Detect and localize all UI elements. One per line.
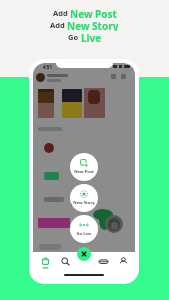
staticText: Live: [81, 31, 102, 43]
button[interactable]: Go Live: [70, 215, 98, 243]
staticText: Add: [50, 20, 67, 30]
staticText: Go: [68, 32, 81, 42]
staticText: Go Live: [76, 231, 92, 237]
staticText: New Story: [73, 200, 95, 206]
staticText: 4:51: [43, 64, 52, 70]
button[interactable]: New Post: [70, 153, 98, 181]
staticText: New Post: [70, 7, 117, 19]
button[interactable]: Profile: [115, 253, 131, 269]
staticText: Add: [53, 8, 70, 18]
button[interactable]: New Story: [70, 184, 98, 212]
staticText: New Story: [67, 19, 119, 31]
button[interactable]: Home: [37, 253, 53, 269]
button[interactable]: Shop: [95, 253, 111, 269]
staticText: New Post: [74, 169, 94, 175]
button[interactable]: Close: [77, 247, 91, 261]
button[interactable]: Search: [57, 253, 73, 269]
